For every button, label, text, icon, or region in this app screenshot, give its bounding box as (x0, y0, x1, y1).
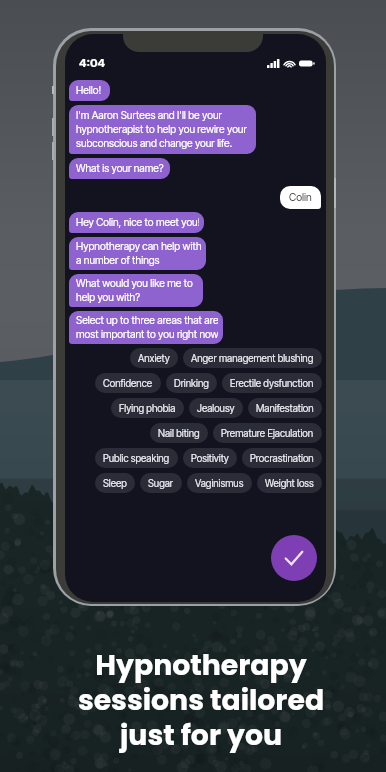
staticText: Anger management blushing (191, 352, 314, 364)
staticText: Jealousy (197, 402, 235, 414)
button[interactable]: Jealousy (189, 398, 243, 418)
staticText: Vaginismus (195, 477, 244, 489)
staticText: Public speaking (103, 452, 170, 464)
button[interactable]: Vaginismus (187, 473, 252, 493)
button[interactable]: Procrastination (242, 448, 322, 468)
button[interactable]: Erectile dysfunction (222, 373, 322, 393)
button[interactable]: Drinking (166, 373, 217, 393)
staticText: Erectile dysfunction (230, 377, 314, 389)
staticText: Colin (289, 191, 312, 204)
staticText: Hey Colin, nice to meet you! (76, 216, 199, 229)
button[interactable]: Premature Ejaculation (213, 423, 322, 443)
button[interactable]: Select up to three areas that are most i… (69, 311, 223, 344)
button[interactable]: Colin (280, 186, 321, 209)
staticText: Manifestation (256, 402, 314, 414)
button[interactable]: I'm Aaron Surtees and I'll be your hypno… (69, 105, 256, 154)
button[interactable]: What would you like me to help you with? (69, 274, 203, 307)
button[interactable]: Nail biting (150, 423, 208, 443)
button[interactable]: Hey Colin, nice to meet you! (69, 212, 204, 233)
button[interactable]: Public speaking (95, 448, 178, 468)
button[interactable]: Confidence (95, 373, 161, 393)
staticText: What would you like me to help you with? (76, 277, 193, 304)
button[interactable]: Anger management blushing (183, 348, 322, 368)
staticText: Anxiety (138, 352, 170, 364)
staticText: Hello! (76, 84, 102, 97)
button[interactable]: Flying phobia (111, 398, 184, 418)
staticText: Nail biting (158, 427, 200, 439)
staticText: Sugar (148, 477, 174, 489)
button[interactable]: Hypnotherapy can help with a number of t… (69, 237, 206, 270)
button[interactable]: Weight loss (257, 473, 322, 493)
staticText: Hypnotherapy sessions tailored just for … (8, 645, 386, 755)
button[interactable]: Manifestation (248, 398, 322, 418)
staticText: Procrastination (250, 452, 314, 464)
staticText: What is your name? (76, 162, 164, 175)
button[interactable]: Sleep (95, 473, 135, 493)
staticText: 4:04 (79, 56, 105, 70)
staticText: Select up to three areas that are most i… (76, 314, 218, 341)
staticText: Weight loss (265, 477, 314, 489)
staticText: Confidence (103, 377, 153, 389)
staticText: Hypnotherapy can help with a number of t… (76, 240, 201, 267)
button[interactable]: What is your name? (69, 158, 170, 179)
staticText: I'm Aaron Surtees and I'll be your hypno… (76, 109, 247, 150)
button[interactable]: Hello! (69, 80, 110, 101)
button[interactable]: Anxiety (130, 348, 178, 368)
button[interactable]: Sugar (140, 473, 182, 493)
button[interactable]: Positivity (183, 448, 237, 468)
staticText: Flying phobia (119, 402, 176, 414)
button[interactable]: Confirm selection (271, 535, 317, 581)
staticText: Premature Ejaculation (221, 427, 314, 439)
staticText: Drinking (174, 377, 209, 389)
staticText: Positivity (191, 452, 229, 464)
staticText: Sleep (103, 477, 127, 489)
